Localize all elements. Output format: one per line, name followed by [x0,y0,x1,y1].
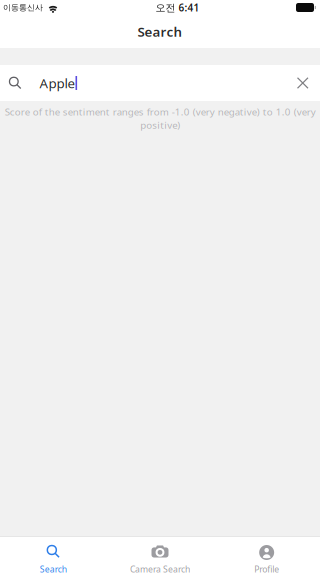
staticText: 오전 6:41 [155,1,199,14]
staticText: Score of the sentiment ranges from -1.0 … [4,105,315,131]
button[interactable]: Clear text [285,71,320,95]
staticText: 이동통신사 [3,2,43,13]
staticText: Profile [254,563,279,573]
staticText: Apple [39,74,75,92]
staticText: Search [137,22,182,41]
staticText: Camera Search [130,563,190,573]
button[interactable]: Search [0,537,107,573]
button[interactable]: Profile [213,537,320,573]
staticText: Search [40,563,67,573]
button[interactable]: Camera Search [107,537,213,573]
